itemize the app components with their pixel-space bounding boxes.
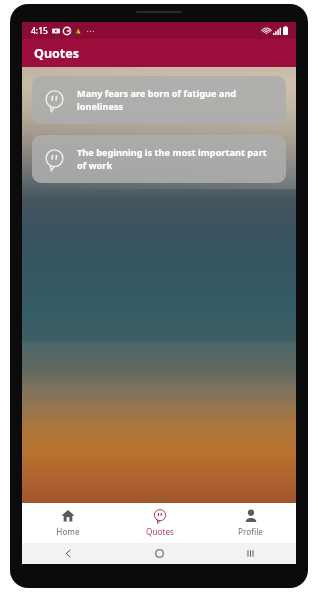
button[interactable]: Home [114,543,205,564]
staticText: Many fears are born of fatigue and lonel… [77,87,274,113]
staticText: Quotes [34,45,79,62]
staticText: Profile [238,526,263,537]
button[interactable]: Profile [205,503,296,543]
button[interactable]: Back [22,543,114,564]
button[interactable]: Quotes [114,503,205,543]
staticText: The beginning is the most important part… [77,146,274,172]
staticText: Home [56,526,80,537]
button[interactable]: Home [22,503,114,543]
staticText: 4:15 [31,25,48,37]
button[interactable]: Many fears are born of fatigue and lonel… [32,76,286,124]
button[interactable]: The beginning is the most important part… [32,135,286,183]
button[interactable]: Recents [205,543,296,564]
staticText: Quotes [146,526,174,537]
